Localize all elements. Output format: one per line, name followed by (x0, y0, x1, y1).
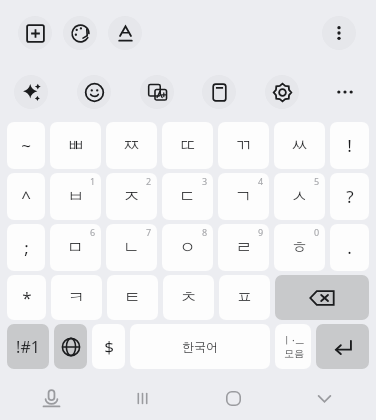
staticText: ㅅ (291, 186, 308, 207)
staticText: ! (347, 134, 352, 157)
button[interactable]: ? (330, 173, 369, 220)
staticText: ㄴ (123, 237, 140, 258)
button[interactable]: . (330, 224, 369, 271)
staticText: 6 (90, 226, 96, 238)
staticText: ㅌ (124, 287, 141, 308)
button[interactable]: Settings (265, 75, 299, 109)
button[interactable]: Enter (316, 324, 369, 369)
button[interactable]: ^ (7, 173, 45, 220)
button[interactable]: ㅆ (274, 122, 325, 169)
button[interactable]: ; (7, 224, 45, 271)
staticText: ㅂ (67, 186, 84, 207)
button[interactable]: ㄲ (218, 122, 269, 169)
staticText: 0 (314, 226, 320, 238)
button[interactable]: ! (330, 122, 369, 169)
staticText: ㅎ (291, 237, 308, 258)
staticText: ㄱ (235, 186, 252, 207)
staticText: ㅉ (123, 135, 140, 156)
staticText: ~ (21, 134, 31, 157)
staticText: * (22, 286, 32, 309)
button[interactable]: ㅅ (274, 173, 325, 220)
button[interactable]: ㄱ (218, 173, 269, 220)
button[interactable]: Clipboard (202, 75, 236, 109)
button[interactable]: Emoji (77, 75, 111, 109)
staticText: ㅇ (179, 237, 196, 258)
button[interactable]: ㄴ (106, 224, 157, 271)
staticText: ㅊ (180, 287, 197, 308)
button[interactable]: ㄹ (218, 224, 269, 271)
button[interactable]: Translate (140, 75, 174, 109)
button[interactable]: Recents (97, 376, 188, 420)
staticText: 5 (314, 175, 320, 187)
button[interactable]: AI suggestions (14, 75, 48, 109)
staticText: 2 (146, 175, 152, 187)
button[interactable]: ㅎ (274, 224, 325, 271)
button[interactable]: !#1 (7, 324, 49, 369)
staticText: 7 (146, 226, 152, 238)
button[interactable]: ㄸ (162, 122, 213, 169)
staticText: ㄹ (235, 237, 252, 258)
staticText: ㅈ (123, 186, 140, 207)
staticText: ㄲ (235, 135, 252, 156)
button[interactable]: ㅍ (219, 275, 270, 320)
button[interactable]: More (328, 75, 362, 109)
button[interactable]: Change language (54, 324, 87, 369)
button[interactable]: Voice input (6, 376, 97, 420)
staticText: ㅆ (291, 135, 308, 156)
staticText: 1 (90, 175, 96, 187)
staticText: ㅃ (67, 135, 84, 156)
button[interactable]: Backspace (275, 275, 369, 320)
staticText: ㄸ (179, 135, 196, 156)
button[interactable]: Theme (63, 16, 97, 50)
staticText: !#1 (16, 336, 40, 358)
staticText: ? (346, 185, 354, 208)
button[interactable]: ㅇ (162, 224, 213, 271)
staticText: 3 (202, 175, 208, 187)
button[interactable]: More options (322, 16, 356, 50)
button[interactable]: ㅃ (50, 122, 101, 169)
button[interactable]: ㅋ (51, 275, 102, 320)
staticText: 모음 (284, 347, 304, 360)
staticText: ^ (21, 185, 31, 208)
button[interactable]: ㅌ (107, 275, 158, 320)
button[interactable]: ㅁ (50, 224, 101, 271)
button[interactable]: ㅂ (50, 173, 101, 220)
staticText: ; (24, 236, 29, 259)
staticText: 한국어 (182, 339, 218, 354)
button[interactable]: ㄷ (162, 173, 213, 220)
staticText: $ (104, 335, 114, 358)
staticText: ㄷ (179, 186, 196, 207)
button[interactable]: * (7, 275, 46, 320)
button[interactable]: Home (188, 376, 279, 420)
staticText: 8 (202, 226, 208, 238)
staticText: 4 (258, 175, 264, 187)
button[interactable]: Text format (108, 16, 142, 50)
button[interactable]: Add (18, 16, 52, 50)
button[interactable]: ㅣ·ㅡ (275, 324, 311, 369)
staticText: ㅋ (68, 287, 85, 308)
staticText: ㅍ (236, 287, 253, 308)
button[interactable]: ㅉ (106, 122, 157, 169)
staticText: . (347, 236, 352, 259)
staticText: ㅣ·ㅡ (282, 333, 305, 347)
button[interactable]: 한국어 (130, 324, 270, 369)
button[interactable]: Hide keyboard (279, 376, 370, 420)
staticText: ㅁ (67, 237, 84, 258)
button[interactable]: $ (92, 324, 125, 369)
staticText: 9 (258, 226, 264, 238)
button[interactable]: ㅈ (106, 173, 157, 220)
button[interactable]: ~ (7, 122, 45, 169)
button[interactable]: ㅊ (163, 275, 214, 320)
